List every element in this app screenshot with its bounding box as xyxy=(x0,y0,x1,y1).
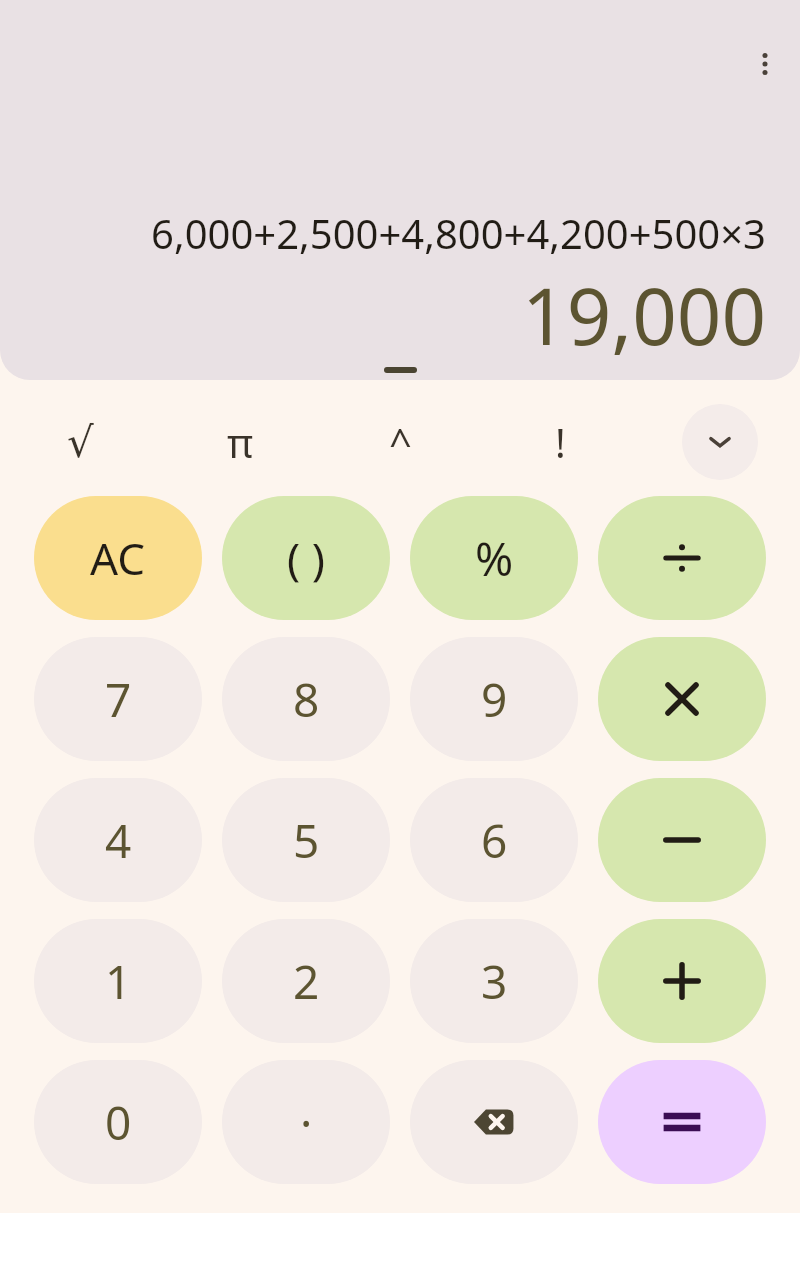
button[interactable]: ! xyxy=(480,398,640,486)
button[interactable]: 2 xyxy=(222,919,390,1043)
staticText: ^ xyxy=(389,415,412,469)
button[interactable]: 9 xyxy=(410,637,578,761)
staticText: ! xyxy=(555,415,566,469)
button[interactable]: More options xyxy=(731,30,799,98)
button[interactable]: 4 xyxy=(34,778,202,902)
staticText: 0 xyxy=(105,1091,132,1154)
staticText: 3 xyxy=(481,950,508,1013)
button[interactable]: 3 xyxy=(410,919,578,1043)
button[interactable]: Plus xyxy=(598,919,766,1043)
button[interactable]: Equals xyxy=(598,1060,766,1184)
button[interactable]: Multiply xyxy=(598,637,766,761)
button[interactable]: Divide xyxy=(598,496,766,620)
button[interactable]: 6 xyxy=(410,778,578,902)
staticText: · xyxy=(300,1091,313,1154)
staticText: 1 xyxy=(105,950,132,1013)
button[interactable]: Backspace xyxy=(410,1060,578,1184)
button[interactable]: ^ xyxy=(320,398,480,486)
button[interactable]: 1 xyxy=(34,919,202,1043)
staticText: π xyxy=(227,415,254,469)
staticText: √ xyxy=(67,418,94,467)
staticText: 4 xyxy=(105,809,132,872)
staticText: 8 xyxy=(293,668,320,731)
staticText: 2 xyxy=(293,950,320,1013)
button[interactable]: · xyxy=(222,1060,390,1184)
button[interactable]: 7 xyxy=(34,637,202,761)
button[interactable]: 5 xyxy=(222,778,390,902)
staticText: 6 xyxy=(481,809,508,872)
staticText: 5 xyxy=(293,809,320,872)
staticText: 6,000+2,500+4,800+4,200+500×3 xyxy=(38,206,766,260)
button[interactable]: Collapse functions xyxy=(682,404,758,480)
staticText: % xyxy=(475,527,514,590)
staticText: 9 xyxy=(481,668,508,731)
button[interactable]: 8 xyxy=(222,637,390,761)
button[interactable]: √ xyxy=(0,398,160,486)
button[interactable]: ( ) xyxy=(222,496,390,620)
staticText: 7 xyxy=(105,668,132,731)
staticText: ( ) xyxy=(287,528,325,588)
button[interactable]: π xyxy=(160,398,320,486)
button[interactable]: 0 xyxy=(34,1060,202,1184)
button[interactable]: % xyxy=(410,496,578,620)
staticText: 19,000 xyxy=(38,262,766,368)
button[interactable]: AC xyxy=(34,496,202,620)
button[interactable]: Minus xyxy=(598,778,766,902)
staticText: AC xyxy=(90,528,146,588)
